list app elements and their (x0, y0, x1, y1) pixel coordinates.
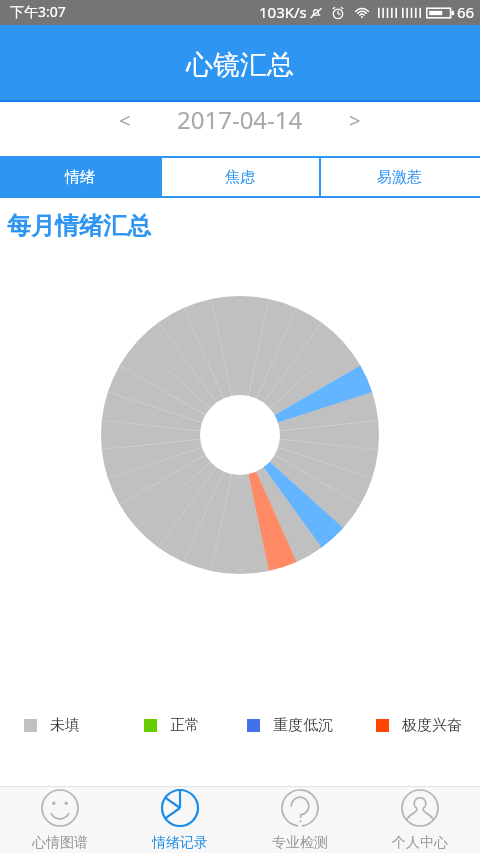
staticText: < (119, 107, 131, 134)
staticText: 情绪 (65, 168, 95, 187)
button[interactable]: 焦虑 (160, 156, 319, 198)
staticText: 正常 (170, 716, 200, 735)
staticText: 66 (457, 2, 475, 22)
staticText: 2017-04-14 (177, 103, 303, 136)
staticText: 103K/s (259, 2, 307, 22)
staticText: 未填 (50, 716, 80, 735)
button[interactable]: 个人中心 (360, 787, 480, 853)
staticText: > (349, 107, 361, 134)
button[interactable]: 情绪 (0, 156, 160, 198)
staticText: 心镜汇总 (186, 48, 294, 82)
staticText: 专业检测 (272, 834, 328, 852)
staticText: 极度兴奋 (402, 716, 462, 735)
staticText: 个人中心 (392, 834, 448, 852)
staticText: 情绪记录 (152, 834, 208, 852)
button[interactable]: 专业检测 (240, 787, 360, 853)
button[interactable]: 易激惹 (319, 156, 480, 198)
staticText: 每月情绪汇总 (7, 211, 151, 241)
button[interactable]: Next day (333, 98, 377, 142)
button[interactable]: Previous day (103, 98, 147, 142)
button[interactable]: 2017-04-14 (173, 97, 307, 142)
button[interactable]: 心情图谱 (0, 787, 120, 853)
staticText: 重度低沉 (273, 716, 333, 735)
button[interactable]: 情绪记录 (120, 787, 240, 853)
staticText: 易激惹 (377, 168, 422, 187)
staticText: 下午3:07 (10, 2, 66, 21)
staticText: 焦虑 (225, 168, 255, 187)
staticText: 心情图谱 (32, 834, 88, 852)
